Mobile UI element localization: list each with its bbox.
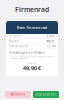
staticText: Jetzt bestellen <box>35 93 56 96</box>
staticText: Hersteller <box>9 34 23 38</box>
staticText: Modell <box>9 39 19 43</box>
staticText: Cube <box>47 34 55 38</box>
staticText: monatliche Rate <box>27 62 37 64</box>
staticText: Firmenrad <box>15 5 49 14</box>
staticText: 52 cm <box>47 44 55 48</box>
staticText: Dein Firmenrad <box>16 25 47 30</box>
staticText: Rahmengröße <box>9 44 29 48</box>
staticText: 49,90 € <box>23 65 41 72</box>
staticText: Versicherung, Wartung, Verschleiß und Di… <box>10 56 53 59</box>
staticText: Im Leasingpreis enthalten <box>9 51 45 54</box>
button[interactable]: Ablehnen <box>5 91 31 98</box>
staticText: Nature <box>46 39 55 43</box>
button[interactable]: Jetzt bestellen <box>33 91 59 98</box>
staticText: Ablehnen <box>10 93 25 96</box>
